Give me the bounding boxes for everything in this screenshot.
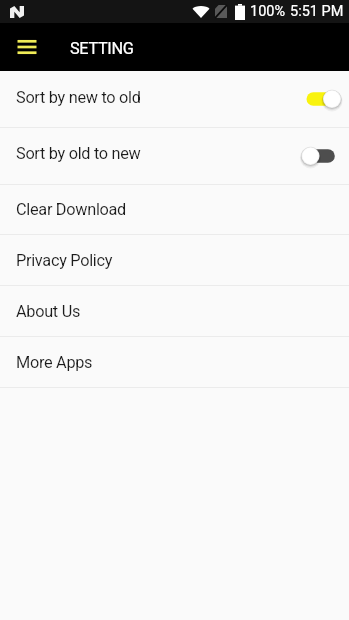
staticText: About Us [16,302,81,321]
staticText: Privacy Policy [16,251,113,270]
staticText: SETTING [70,39,134,58]
staticText: Sort by old to new [16,144,141,163]
staticText: 5:51 PM [290,3,344,20]
button[interactable]: Sort by new to old [0,71,349,127]
button[interactable]: Privacy Policy [0,235,349,285]
button[interactable]: Sort by old to new [0,128,349,184]
button[interactable]: More Apps [0,337,349,387]
staticText: Clear Download [16,200,126,219]
button[interactable]: About Us [0,286,349,336]
button[interactable]: Open navigation menu [8,28,46,66]
button[interactable]: Clear Download [0,185,349,234]
staticText: Sort by new to old [16,88,141,107]
staticText: 100% [250,3,286,20]
button[interactable]: Sort by old to new, off [302,143,342,169]
button[interactable]: Sort by new to old, on [302,86,342,112]
staticText: More Apps [16,353,93,372]
